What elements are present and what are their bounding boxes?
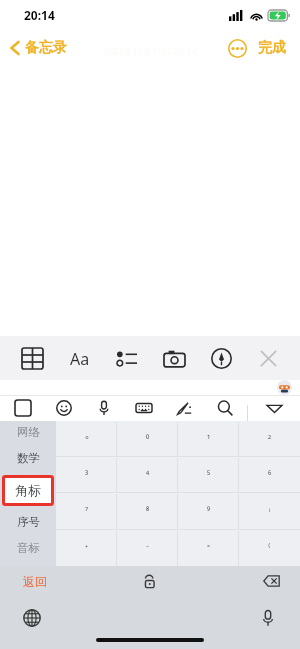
- button[interactable]: 手写: [167, 395, 201, 421]
- button[interactable]: ⁰: [117, 421, 178, 456]
- button[interactable]: 数学: [0, 443, 56, 473]
- button[interactable]: 网络: [0, 421, 56, 443]
- button[interactable]: 音标: [0, 537, 56, 559]
- button[interactable]: 更多: [222, 33, 252, 63]
- staticText: ⁶: [268, 469, 272, 481]
- button[interactable]: ⁺: [56, 530, 117, 566]
- button[interactable]: ⁶: [239, 457, 300, 492]
- button[interactable]: ⁴: [117, 457, 178, 492]
- button[interactable]: ³: [56, 457, 117, 492]
- button[interactable]: 锁定: [130, 568, 170, 594]
- button[interactable]: ¹: [178, 421, 239, 456]
- staticText: ¹: [207, 433, 211, 445]
- staticText: ⁻: [146, 542, 150, 554]
- staticText: ⁸: [146, 505, 150, 517]
- button[interactable]: 角标: [0, 473, 56, 507]
- staticText: 数学: [17, 451, 40, 465]
- staticText: 备忘录: [25, 39, 67, 57]
- staticText: ⁷: [85, 505, 89, 517]
- button[interactable]: ⁽: [239, 530, 300, 566]
- staticText: ²: [268, 433, 272, 445]
- button[interactable]: 表情: [47, 395, 81, 421]
- button[interactable]: ⁸: [117, 493, 178, 529]
- staticText: 返回: [23, 574, 47, 589]
- staticText: 角标: [15, 482, 41, 498]
- button[interactable]: °: [56, 421, 117, 456]
- button[interactable]: 关闭: [247, 337, 289, 379]
- staticText: ³: [85, 469, 89, 481]
- button[interactable]: 键盘: [127, 395, 161, 421]
- button[interactable]: ⁵: [178, 457, 239, 492]
- button[interactable]: 备忘录: [0, 35, 77, 61]
- button[interactable]: 搜索: [208, 395, 242, 421]
- button[interactable]: 标记: [200, 337, 242, 379]
- button[interactable]: 输入法: [6, 395, 40, 421]
- button[interactable]: ⁹: [178, 493, 239, 529]
- staticText: 序号: [17, 515, 40, 529]
- staticText: ⁱ: [269, 505, 271, 517]
- button[interactable]: 序号: [0, 507, 56, 537]
- staticText: ⁹: [207, 505, 211, 517]
- button[interactable]: 表格: [11, 337, 53, 379]
- staticText: °: [85, 433, 89, 445]
- staticText: Aa: [70, 348, 90, 369]
- staticText: ⁵: [207, 469, 211, 481]
- button[interactable]: 语音输入: [254, 604, 282, 632]
- button[interactable]: 文字格式: [58, 337, 100, 379]
- staticText: 网络: [17, 425, 40, 439]
- button[interactable]: 切换语言: [18, 604, 46, 632]
- staticText: 完成: [258, 39, 286, 57]
- staticText: 20:14: [24, 7, 55, 23]
- staticText: ⁼: [207, 542, 211, 554]
- button[interactable]: 返回: [0, 566, 70, 596]
- staticText: 音标: [17, 541, 40, 555]
- staticText: ⁺: [85, 542, 89, 554]
- button[interactable]: ²: [239, 421, 300, 456]
- staticText: ⁰: [146, 433, 150, 445]
- button[interactable]: ⁼: [178, 530, 239, 566]
- staticText: ⁽: [268, 542, 271, 554]
- button[interactable]: 删除: [256, 566, 286, 596]
- button[interactable]: 语音: [87, 395, 121, 421]
- button[interactable]: ⁷: [56, 493, 117, 529]
- button[interactable]: 完成: [252, 33, 300, 63]
- staticText: ⁴: [146, 469, 150, 481]
- button[interactable]: 收起: [248, 395, 300, 421]
- button[interactable]: 相机: [153, 337, 195, 379]
- button[interactable]: 清单: [105, 337, 147, 379]
